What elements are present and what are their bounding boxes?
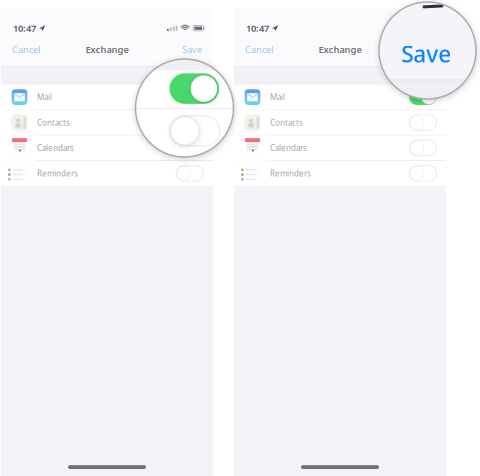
button[interactable]: Contacts	[234, 110, 446, 135]
button[interactable]: Contacts	[1, 110, 213, 135]
staticText: Mail	[270, 92, 285, 102]
button[interactable]: Reminders	[234, 161, 446, 186]
button[interactable]: Calendars	[1, 136, 213, 160]
button[interactable]: Calendars	[234, 136, 446, 160]
button[interactable]: Save	[401, 39, 451, 69]
staticText: Cancel	[245, 43, 273, 56]
button[interactable]: Save	[415, 43, 435, 56]
staticText: Cancel	[12, 43, 40, 56]
staticText: 10:47	[246, 22, 269, 34]
staticText: Reminders	[37, 168, 78, 179]
button[interactable]: Mail	[234, 85, 446, 109]
button[interactable]: Mail	[1, 85, 213, 109]
staticText: Calendars	[37, 143, 74, 153]
button[interactable]	[169, 73, 219, 104]
staticText: Save	[401, 39, 451, 69]
staticText: Reminders	[270, 168, 311, 179]
staticText: Exchange	[318, 43, 361, 56]
button[interactable]: Save	[182, 43, 202, 56]
staticText: Exchange	[85, 43, 128, 56]
button[interactable]: Cancel	[245, 43, 273, 56]
staticText: Save	[182, 43, 202, 56]
staticText: Contacts	[37, 117, 70, 128]
staticText: Contacts	[270, 117, 303, 128]
button[interactable]: Cancel	[12, 43, 40, 56]
button[interactable]	[170, 116, 220, 146]
staticText: Mail	[37, 92, 52, 102]
button[interactable]: Reminders	[1, 161, 213, 186]
staticText: Calendars	[270, 143, 307, 153]
staticText: 10:47	[13, 22, 36, 34]
staticText: Save	[415, 43, 435, 56]
